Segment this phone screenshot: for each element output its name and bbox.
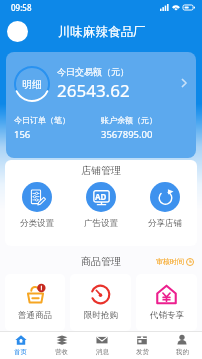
staticText: AD	[95, 191, 107, 202]
button[interactable]: 普通商品	[5, 274, 65, 331]
staticText: 明细	[22, 78, 42, 91]
button[interactable]: AD	[69, 182, 133, 229]
button[interactable]: 审核时间	[156, 257, 194, 266]
staticText: 我的	[176, 348, 189, 356]
staticText: 156	[14, 128, 31, 141]
staticText: 09:58	[11, 2, 32, 13]
staticText: 分享店铺	[148, 218, 182, 229]
button[interactable]: 明细	[6, 52, 196, 158]
staticText: 今日订单（笔）	[14, 115, 70, 125]
staticText: 店铺管理	[5, 164, 197, 177]
staticText: 普通商品	[18, 310, 52, 321]
staticText: 今日交易额（元）	[57, 66, 129, 77]
button[interactable]: 分享店铺	[133, 182, 197, 229]
staticText: 商品管理	[81, 255, 121, 268]
staticText: 代销专享	[150, 310, 184, 321]
button[interactable]: 分类设置	[5, 182, 69, 229]
staticText: 广告设置	[84, 218, 118, 229]
button[interactable]: 发货	[122, 331, 162, 359]
staticText: 账户余额（元）	[101, 115, 157, 125]
button[interactable]: 营收	[41, 331, 82, 359]
button[interactable]: 代销专享	[136, 274, 197, 331]
staticText: 首页	[14, 348, 27, 356]
staticText: 审核时间	[156, 257, 184, 266]
staticText: 消息	[96, 348, 109, 356]
staticText: 限时抢购	[84, 310, 118, 321]
button[interactable]: 消息	[82, 331, 122, 359]
staticText: 发货	[136, 348, 149, 356]
staticText: 川味麻辣食品厂	[58, 24, 146, 40]
button[interactable]: Shop avatar	[7, 21, 28, 42]
staticText: 26543.62	[57, 79, 130, 102]
staticText: 分类设置	[20, 218, 54, 229]
other: More details	[178, 77, 190, 89]
staticText: 营收	[55, 348, 68, 356]
button[interactable]: 首页	[0, 331, 41, 359]
button[interactable]: 限时抢购	[70, 274, 131, 331]
staticText: 3567895.00	[101, 128, 153, 141]
button[interactable]: 我的	[162, 331, 202, 359]
